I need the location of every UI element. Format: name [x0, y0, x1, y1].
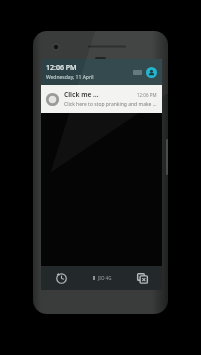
- button[interactable]: History: [41, 266, 82, 290]
- staticText: Wednesday, 11 April: [46, 74, 94, 81]
- staticText: Click me to make it work: [64, 90, 100, 99]
- staticText: JIO 4G: [98, 275, 112, 281]
- staticText: 12:06 PM: [46, 63, 77, 73]
- staticText: Click here to stop pranking and make thi…: [64, 101, 157, 108]
- button[interactable]: Account: [146, 67, 157, 78]
- button[interactable]: Click me to make it work: [41, 85, 162, 113]
- button[interactable]: Recents: [122, 266, 162, 290]
- staticText: 12:06 PM: [137, 92, 157, 98]
